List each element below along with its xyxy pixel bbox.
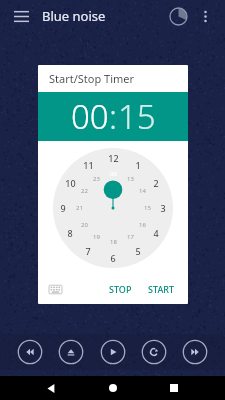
button[interactable]: Switch to keyboard input: [45, 279, 65, 299]
staticText: :: [109, 94, 118, 139]
button[interactable]: Open navigation menu: [8, 3, 34, 29]
staticText: 3: [160, 202, 166, 214]
staticText: 20: [81, 221, 88, 229]
button[interactable]: START: [142, 279, 181, 299]
staticText: 21: [76, 204, 83, 212]
staticText: 1: [135, 159, 141, 171]
staticText: 14: [139, 187, 146, 195]
staticText: 10: [65, 177, 76, 189]
staticText: 7: [85, 245, 91, 257]
button[interactable]: Back: [40, 377, 62, 399]
staticText: 22: [81, 187, 88, 195]
button[interactable]: Sleep timer: [165, 3, 191, 29]
staticText: 16: [139, 221, 146, 229]
button[interactable]: More options: [193, 4, 217, 28]
staticText: 12: [108, 152, 119, 164]
staticText: 18: [110, 238, 117, 246]
staticText: STOP: [109, 283, 132, 295]
staticText: 23: [93, 175, 100, 183]
staticText: 13: [127, 175, 134, 183]
button[interactable]: STOP: [103, 279, 138, 299]
staticText: START: [148, 283, 175, 295]
staticText: 8: [67, 227, 73, 239]
staticText: 4: [153, 227, 159, 239]
button[interactable]: Stop: [57, 338, 85, 366]
button[interactable]: Rewind: [16, 338, 44, 366]
staticText: 00: [110, 170, 117, 178]
staticText: 6: [110, 252, 116, 264]
staticText: 17: [127, 233, 134, 241]
staticText: 15: [118, 94, 156, 139]
button[interactable]: Play: [99, 338, 127, 366]
button[interactable]: Recent apps: [163, 377, 185, 399]
button[interactable]: Home: [102, 377, 124, 399]
button[interactable]: Repeat: [140, 338, 168, 366]
staticText: Start/Stop Timer: [49, 71, 135, 86]
staticText: 00: [71, 94, 109, 139]
staticText: 19: [93, 233, 100, 241]
staticText: 15: [144, 204, 151, 212]
button[interactable]: Fast forward: [181, 338, 209, 366]
staticText: 11: [83, 159, 94, 171]
staticText: 2: [153, 177, 159, 189]
staticText: Blue noise: [42, 7, 106, 25]
staticText: 9: [60, 202, 66, 214]
staticText: 5: [135, 245, 141, 257]
